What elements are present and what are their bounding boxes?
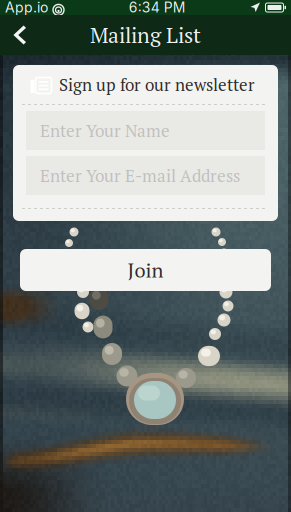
staticText: Mailing List — [90, 21, 201, 49]
button[interactable]: Back — [0, 15, 40, 54]
button[interactable]: Join — [20, 249, 271, 291]
button[interactable]: Enter Your E-mail Address — [26, 156, 265, 195]
staticText: App.io — [5, 0, 48, 16]
staticText: 6:34 PM — [129, 0, 186, 16]
staticText: Join — [127, 257, 163, 283]
staticText: Enter Your Name — [40, 119, 170, 142]
button[interactable]: Enter Your Name — [26, 111, 265, 150]
staticText: Sign up for our newsletter — [59, 73, 255, 96]
staticText: Enter Your E-mail Address — [40, 164, 240, 187]
